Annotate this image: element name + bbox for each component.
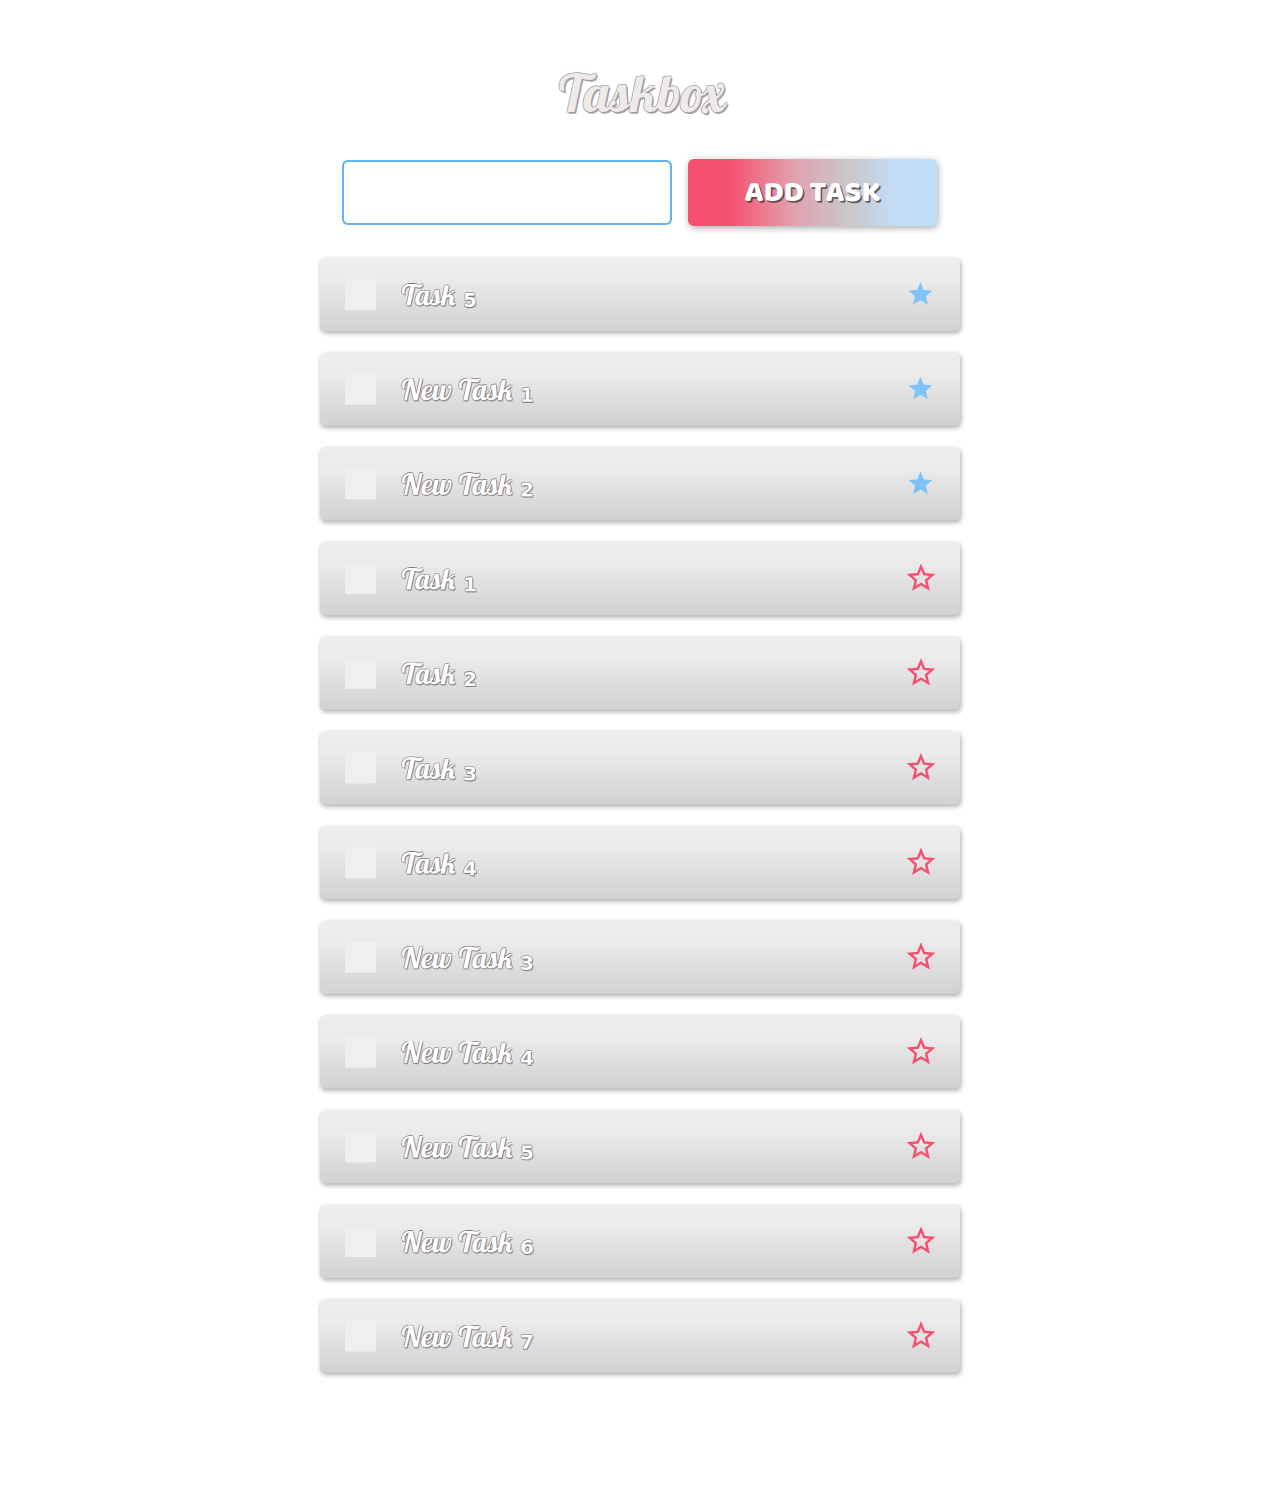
button[interactable]: Task [320,637,960,710]
staticText: Task [399,561,456,598]
staticText: 6 [521,1237,535,1260]
staticText: New Task [401,1224,515,1261]
button[interactable]: New Task [320,1110,960,1183]
staticText: New Task [399,1034,513,1071]
staticText: 6 [520,1236,534,1259]
staticText: 4 [519,1046,533,1069]
staticText: 4 [462,856,476,879]
staticText: New Task [399,371,513,408]
staticText: New Task [400,1128,514,1165]
staticText: 1 [519,383,533,406]
button[interactable]: Task [320,731,960,804]
staticText: 5 [520,1141,534,1164]
staticText: 3 [464,763,478,787]
button[interactable]: New Task [320,921,960,994]
staticText: Taskbox [556,60,724,125]
staticText: 1 [464,572,478,595]
staticText: 3 [521,953,535,976]
staticText: Task [400,560,457,597]
staticText: 3 [519,951,533,974]
staticText: New Task [399,1223,513,1259]
staticText: New Task [401,372,515,409]
button[interactable]: New Task [320,353,960,426]
staticText: Task [399,656,456,692]
staticText: 7 [521,1331,535,1355]
staticText: 1 [462,573,476,597]
staticText: 5 [462,289,476,312]
staticText: New Task [399,940,513,976]
staticText: New Task [401,1223,515,1259]
staticText: Task [400,844,457,881]
staticText: 3 [521,951,535,974]
staticText: New Task [401,467,515,503]
staticText: Task [400,655,457,692]
button[interactable]: New Task [320,1016,960,1089]
staticText: Taskbox [555,59,723,124]
staticText: 7 [519,1330,533,1353]
staticText: Taskbox [557,62,725,127]
staticText: New Task [399,1317,513,1354]
staticText: 1 [520,383,534,407]
staticText: 2 [520,478,534,501]
staticText: 5 [462,288,476,311]
staticText: Task [400,750,457,786]
button[interactable]: Task [320,826,960,899]
staticText: New Task [399,1128,513,1165]
staticText: Task [401,656,458,693]
staticText: Task [401,846,458,882]
staticText: 4 [521,1046,535,1069]
staticText: New Task [401,370,515,407]
staticText: 5 [464,290,478,313]
staticText: Task [399,277,456,313]
staticText: 2 [519,479,533,502]
staticText: New Task [401,938,515,975]
staticText: Task [399,654,456,691]
staticText: Task [401,749,458,786]
staticText: 2 [463,667,477,691]
staticText: 5 [463,289,477,312]
staticText: New Task [400,1318,514,1355]
staticText: New Task [399,370,513,407]
staticText: New Task [400,1034,514,1070]
staticText: 6 [519,1235,533,1258]
button[interactable]: ADD TASK [688,159,937,226]
staticText: New Task [401,1319,515,1356]
button[interactable]: New Task [320,1300,960,1373]
button[interactable]: New Task [320,447,960,520]
staticText: Task [400,276,457,313]
staticText: New Task [400,1223,514,1260]
staticText: Task [399,845,456,882]
staticText: 2 [464,667,478,690]
staticText: New Task [401,465,515,502]
staticText: 1 [464,574,478,597]
button[interactable]: Task [320,258,960,331]
staticText: 5 [464,288,478,311]
staticText: 2 [464,669,478,692]
staticText: New Task [400,939,514,976]
staticText: New Task [399,1129,513,1166]
staticText: 2 [521,477,535,501]
staticText: Task [401,654,458,691]
staticText: 4 [463,857,477,880]
staticText: Task [401,844,458,880]
button[interactable]: Task [320,542,960,615]
button[interactable]: New Task [320,1205,960,1278]
staticText: Task [401,561,458,598]
staticText: 3 [462,763,476,786]
staticText: New Task [399,465,513,502]
staticText: 1 [462,572,476,595]
staticText: Task [399,276,456,312]
staticText: 3 [464,761,478,785]
staticText: Taskbox [555,61,723,126]
staticText: 1 [463,573,477,596]
staticText: New Task [401,1033,515,1070]
staticText: New Task [399,1033,513,1070]
staticText: ADD TASK [744,168,880,217]
staticText: 3 [519,952,533,975]
staticText: Task [399,749,456,786]
staticText: 7 [521,1330,535,1353]
staticText: 6 [521,1235,535,1258]
staticText: 2 [519,477,533,501]
staticText: Task [401,277,458,314]
staticText: 7 [519,1331,533,1354]
